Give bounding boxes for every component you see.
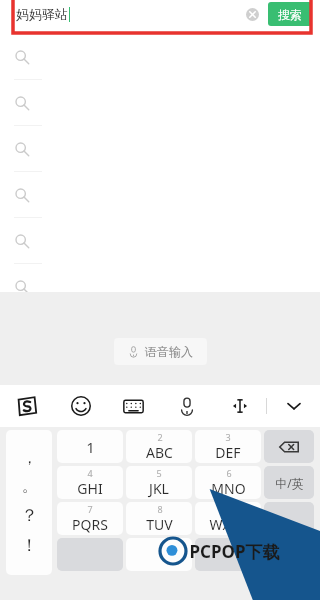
- staticText: PCPOP下载: [189, 540, 280, 563]
- button[interactable]: 语音输入: [114, 338, 207, 365]
- staticText: WXYZ: [209, 515, 247, 534]
- staticText: ，: [22, 449, 37, 468]
- button[interactable]: Emoji: [54, 385, 107, 427]
- button[interactable]: 5: [126, 466, 192, 499]
- button[interactable]: 搜索: [268, 2, 312, 26]
- staticText: 1: [86, 437, 95, 457]
- staticText: 8: [157, 503, 163, 515]
- staticText: MNO: [211, 479, 246, 498]
- button[interactable]: Backspace: [264, 430, 314, 463]
- staticText: JKL: [149, 479, 169, 498]
- staticText: 搜索: [278, 7, 302, 22]
- button[interactable]: 6: [195, 466, 261, 499]
- button[interactable]: Hide keyboard: [267, 385, 320, 427]
- staticText: 4: [87, 467, 93, 479]
- button[interactable]: 9: [195, 502, 261, 535]
- button[interactable]: Voice input: [160, 385, 213, 427]
- staticText: ！: [21, 535, 38, 556]
- button[interactable]: 8: [126, 502, 192, 535]
- button[interactable]: [264, 538, 314, 571]
- staticText: 5: [156, 467, 162, 479]
- button[interactable]: Sogou input: [0, 385, 54, 427]
- button[interactable]: [126, 538, 192, 571]
- staticText: PQRS: [72, 515, 108, 534]
- staticText: ？: [21, 505, 38, 526]
- button[interactable]: [0, 264, 320, 310]
- staticText: 妈妈驿站: [16, 6, 68, 22]
- staticText: 2: [157, 431, 163, 443]
- button[interactable]: Keyboard layout: [107, 385, 160, 427]
- staticText: TUV: [146, 515, 173, 534]
- button[interactable]: ，: [6, 430, 52, 575]
- staticText: 语音输入: [145, 344, 193, 359]
- button[interactable]: 1: [57, 430, 123, 463]
- staticText: DEF: [215, 443, 241, 462]
- button[interactable]: [0, 34, 320, 80]
- staticText: GHI: [77, 479, 103, 498]
- button[interactable]: Move cursor: [213, 385, 266, 427]
- button[interactable]: 7: [57, 502, 123, 535]
- button[interactable]: 4: [57, 466, 123, 499]
- staticText: 3: [225, 431, 231, 443]
- button[interactable]: [195, 538, 261, 571]
- staticText: 7: [87, 503, 93, 515]
- button[interactable]: Clear text: [240, 2, 264, 26]
- button[interactable]: 中/英: [264, 466, 314, 499]
- button[interactable]: 2: [126, 430, 192, 463]
- staticText: 。: [22, 477, 37, 496]
- button[interactable]: 3: [195, 430, 261, 463]
- staticText: 中/英: [275, 475, 304, 491]
- staticText: 6: [226, 467, 232, 479]
- staticText: ABC: [146, 443, 173, 462]
- button[interactable]: [264, 502, 314, 535]
